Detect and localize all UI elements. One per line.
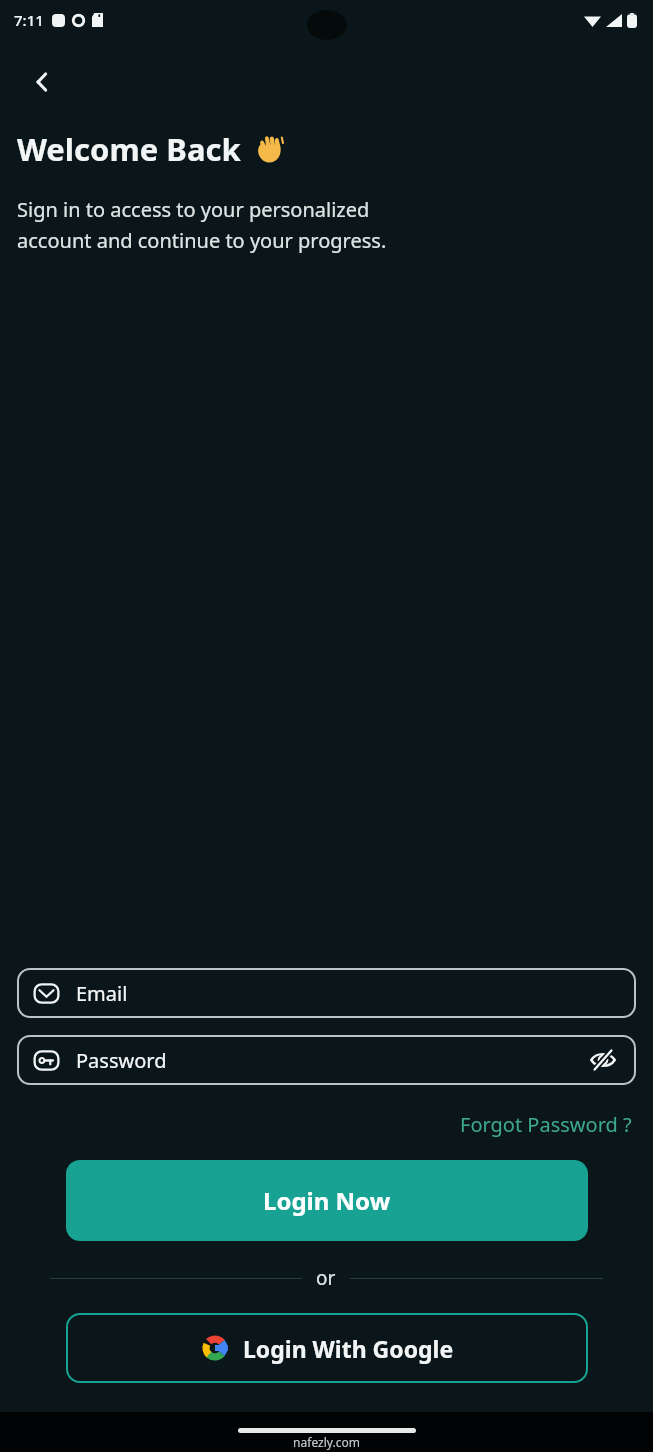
button[interactable]: Password — [17, 1035, 636, 1085]
button[interactable]: Email — [17, 968, 636, 1018]
staticText: Login With Google — [243, 1333, 454, 1364]
staticText: Register — [408, 1409, 492, 1436]
button[interactable]: Show password — [586, 1043, 620, 1077]
staticText: Forgot Password ? — [460, 1111, 632, 1138]
staticText: Welcome Back — [17, 128, 241, 170]
staticText: nafezly.com — [293, 1434, 360, 1450]
button[interactable]: Forgot Password ? — [456, 1107, 636, 1142]
staticText: 7:11 — [14, 10, 44, 30]
button[interactable]: Login With Google — [66, 1313, 588, 1383]
button[interactable]: Register — [408, 1409, 492, 1436]
staticText: Sign in to access to your personalized a… — [17, 196, 387, 253]
button[interactable]: Login Now — [66, 1160, 588, 1241]
button[interactable]: Back — [18, 58, 66, 106]
staticText: or — [316, 1265, 336, 1291]
staticText: Email — [76, 980, 128, 1007]
staticText: Login Now — [263, 1184, 391, 1217]
staticText: Don't Have An Account? — [161, 1409, 400, 1436]
staticText: Password — [76, 1047, 167, 1074]
